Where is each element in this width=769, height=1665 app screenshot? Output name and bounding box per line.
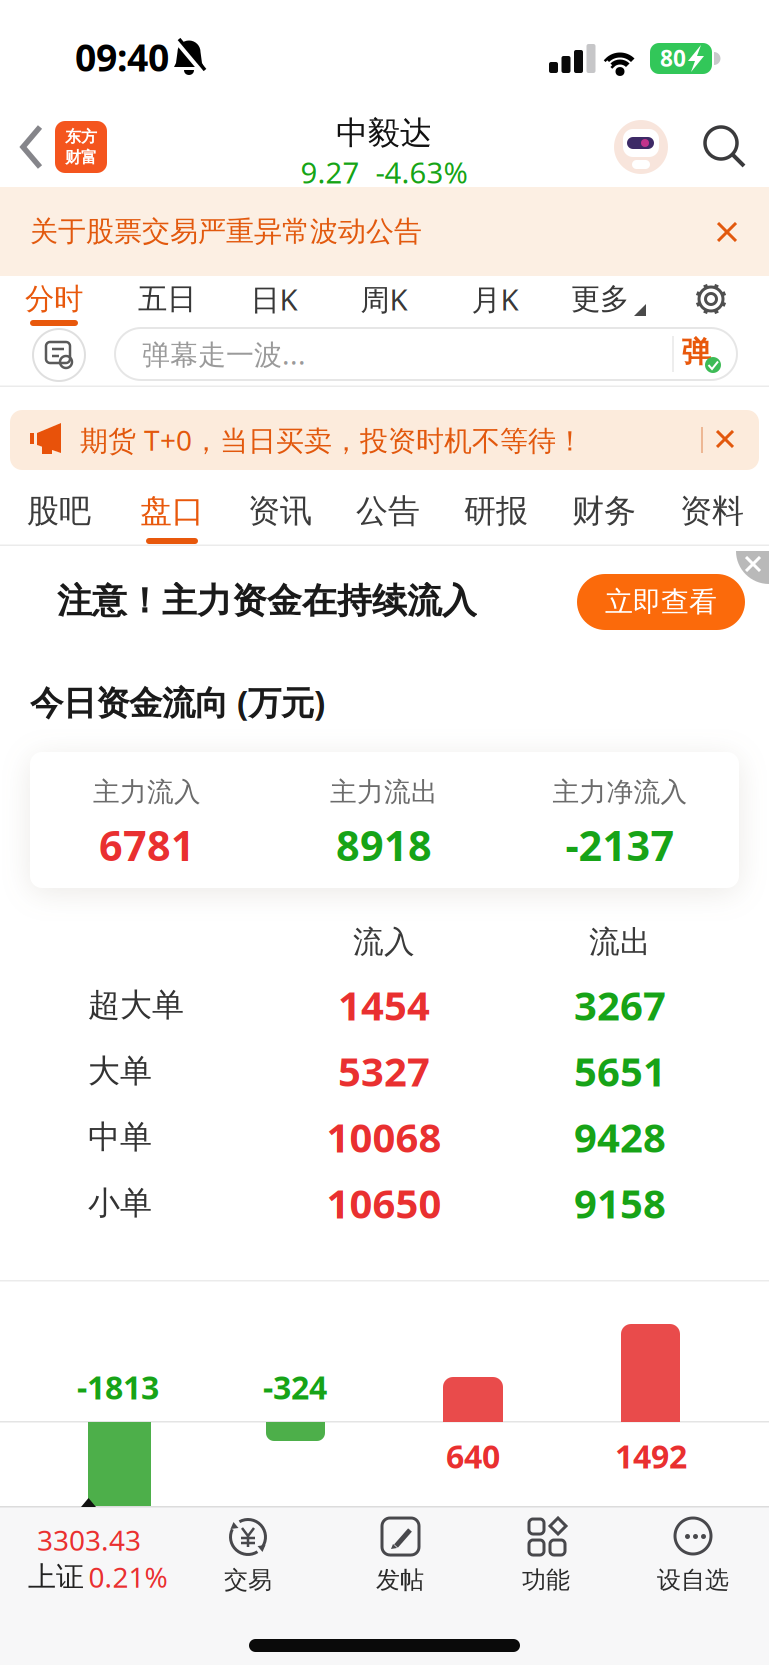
staticText: 09:40 [75,32,169,82]
button[interactable] [614,120,668,174]
button[interactable]: 关于股票交易严重异常波动公告 [0,187,660,233]
staticText: -1813 [77,1366,159,1408]
staticText: 日K [250,279,297,318]
staticText: 设自选 [657,1565,729,1595]
staticText: 5651 [574,1044,666,1097]
staticText: 更多 [571,281,629,317]
staticText: 月K [471,279,518,318]
staticText: 股吧 [27,491,91,531]
staticText: 期货 T+0，当日买卖，投资时机不等待！ [80,421,584,459]
button[interactable]: 股吧 [0,478,105,528]
staticText: 中毅达 [336,113,432,153]
staticText: 盘口 [140,491,204,531]
staticText: 资料 [680,491,744,531]
staticText: -324 [263,1366,327,1408]
staticText: 东方 [65,127,97,146]
button[interactable]: 财务 [0,478,105,528]
staticText: 今日资金流向 (万元) [30,680,325,724]
staticText: 主力净流入 [552,776,687,808]
button[interactable]: 月K [0,276,110,324]
button[interactable]: 周K [0,276,110,324]
staticText: 大单 [88,1051,152,1091]
staticText: 公告 [356,491,420,531]
staticText: 主力流入 [93,776,201,808]
button[interactable]: 功能 [516,1516,576,1606]
button[interactable]: 立即查看 [577,574,745,630]
button[interactable]: 注意！主力资金在持续流入 [0,546,520,599]
staticText: 超大单 [88,985,184,1025]
button[interactable]: 资讯 [0,478,105,528]
staticText: 中单 [88,1117,152,1157]
staticText: 流出 [589,923,651,961]
staticText: 财富 [65,147,97,167]
button[interactable]: 设自选 [658,1516,748,1606]
button[interactable] [707,421,743,457]
staticText: 研报 [464,491,528,531]
staticText: 9.27 -4.63% [300,152,467,191]
staticText: 6781 [99,818,195,872]
staticText: 5327 [338,1044,430,1097]
button[interactable]: 更多 [0,276,110,324]
staticText: 3303.43 [37,1521,141,1559]
staticText: 上证 [28,1560,84,1594]
button[interactable]: 分时 [0,276,110,324]
button[interactable]: 日K [0,276,110,324]
staticText: 8918 [336,818,432,872]
staticText: 资讯 [248,491,312,531]
button[interactable]: 五日 [0,276,110,324]
button[interactable]: 东方 [55,121,107,173]
button[interactable] [33,329,85,381]
staticText: 财务 [572,491,636,531]
button[interactable]: 期货 T+0，当日买卖，投资时机不等待！ [10,410,759,470]
staticText: 流入 [353,923,415,961]
staticText: 五日 [138,281,196,317]
button[interactable]: 研报 [0,478,105,528]
staticText: 小单 [88,1183,152,1223]
staticText: 注意！主力资金在持续流入 [57,580,477,622]
staticText: 发帖 [376,1565,424,1595]
staticText: 1454 [338,978,430,1031]
button[interactable]: 资料 [0,478,105,528]
staticText: 周K [360,279,407,318]
staticText: 10068 [326,1110,441,1163]
button[interactable]: 发帖 [370,1516,430,1606]
button[interactable]: 3303.43 [0,1494,200,1604]
staticText: -2137 [565,818,674,872]
staticText: 3267 [574,978,666,1031]
staticText: 分时 [25,281,83,317]
staticText: 主力流出 [330,776,438,808]
staticText: 10650 [326,1176,441,1229]
button[interactable]: 公告 [0,478,105,528]
staticText: 弹 [681,334,710,370]
staticText: 关于股票交易严重异常波动公告 [30,214,422,249]
button[interactable]: 盘口 [0,478,105,528]
button[interactable] [736,548,769,584]
button[interactable] [707,212,747,252]
staticText: 80 [660,43,686,73]
staticText: 功能 [522,1565,570,1595]
staticText: 9158 [574,1176,666,1229]
button[interactable]: 弹幕走一波... [115,328,737,380]
staticText: 立即查看 [605,585,717,619]
staticText: 弹幕走一波... [142,335,306,373]
staticText: 0.21% [88,1558,167,1596]
button[interactable] [703,125,747,169]
staticText: 1492 [615,1435,687,1477]
staticText: 交易 [224,1565,272,1595]
staticText: 9428 [574,1110,666,1163]
button[interactable] [689,277,733,321]
staticText: 640 [446,1435,500,1477]
button[interactable]: 交易 [218,1516,278,1606]
